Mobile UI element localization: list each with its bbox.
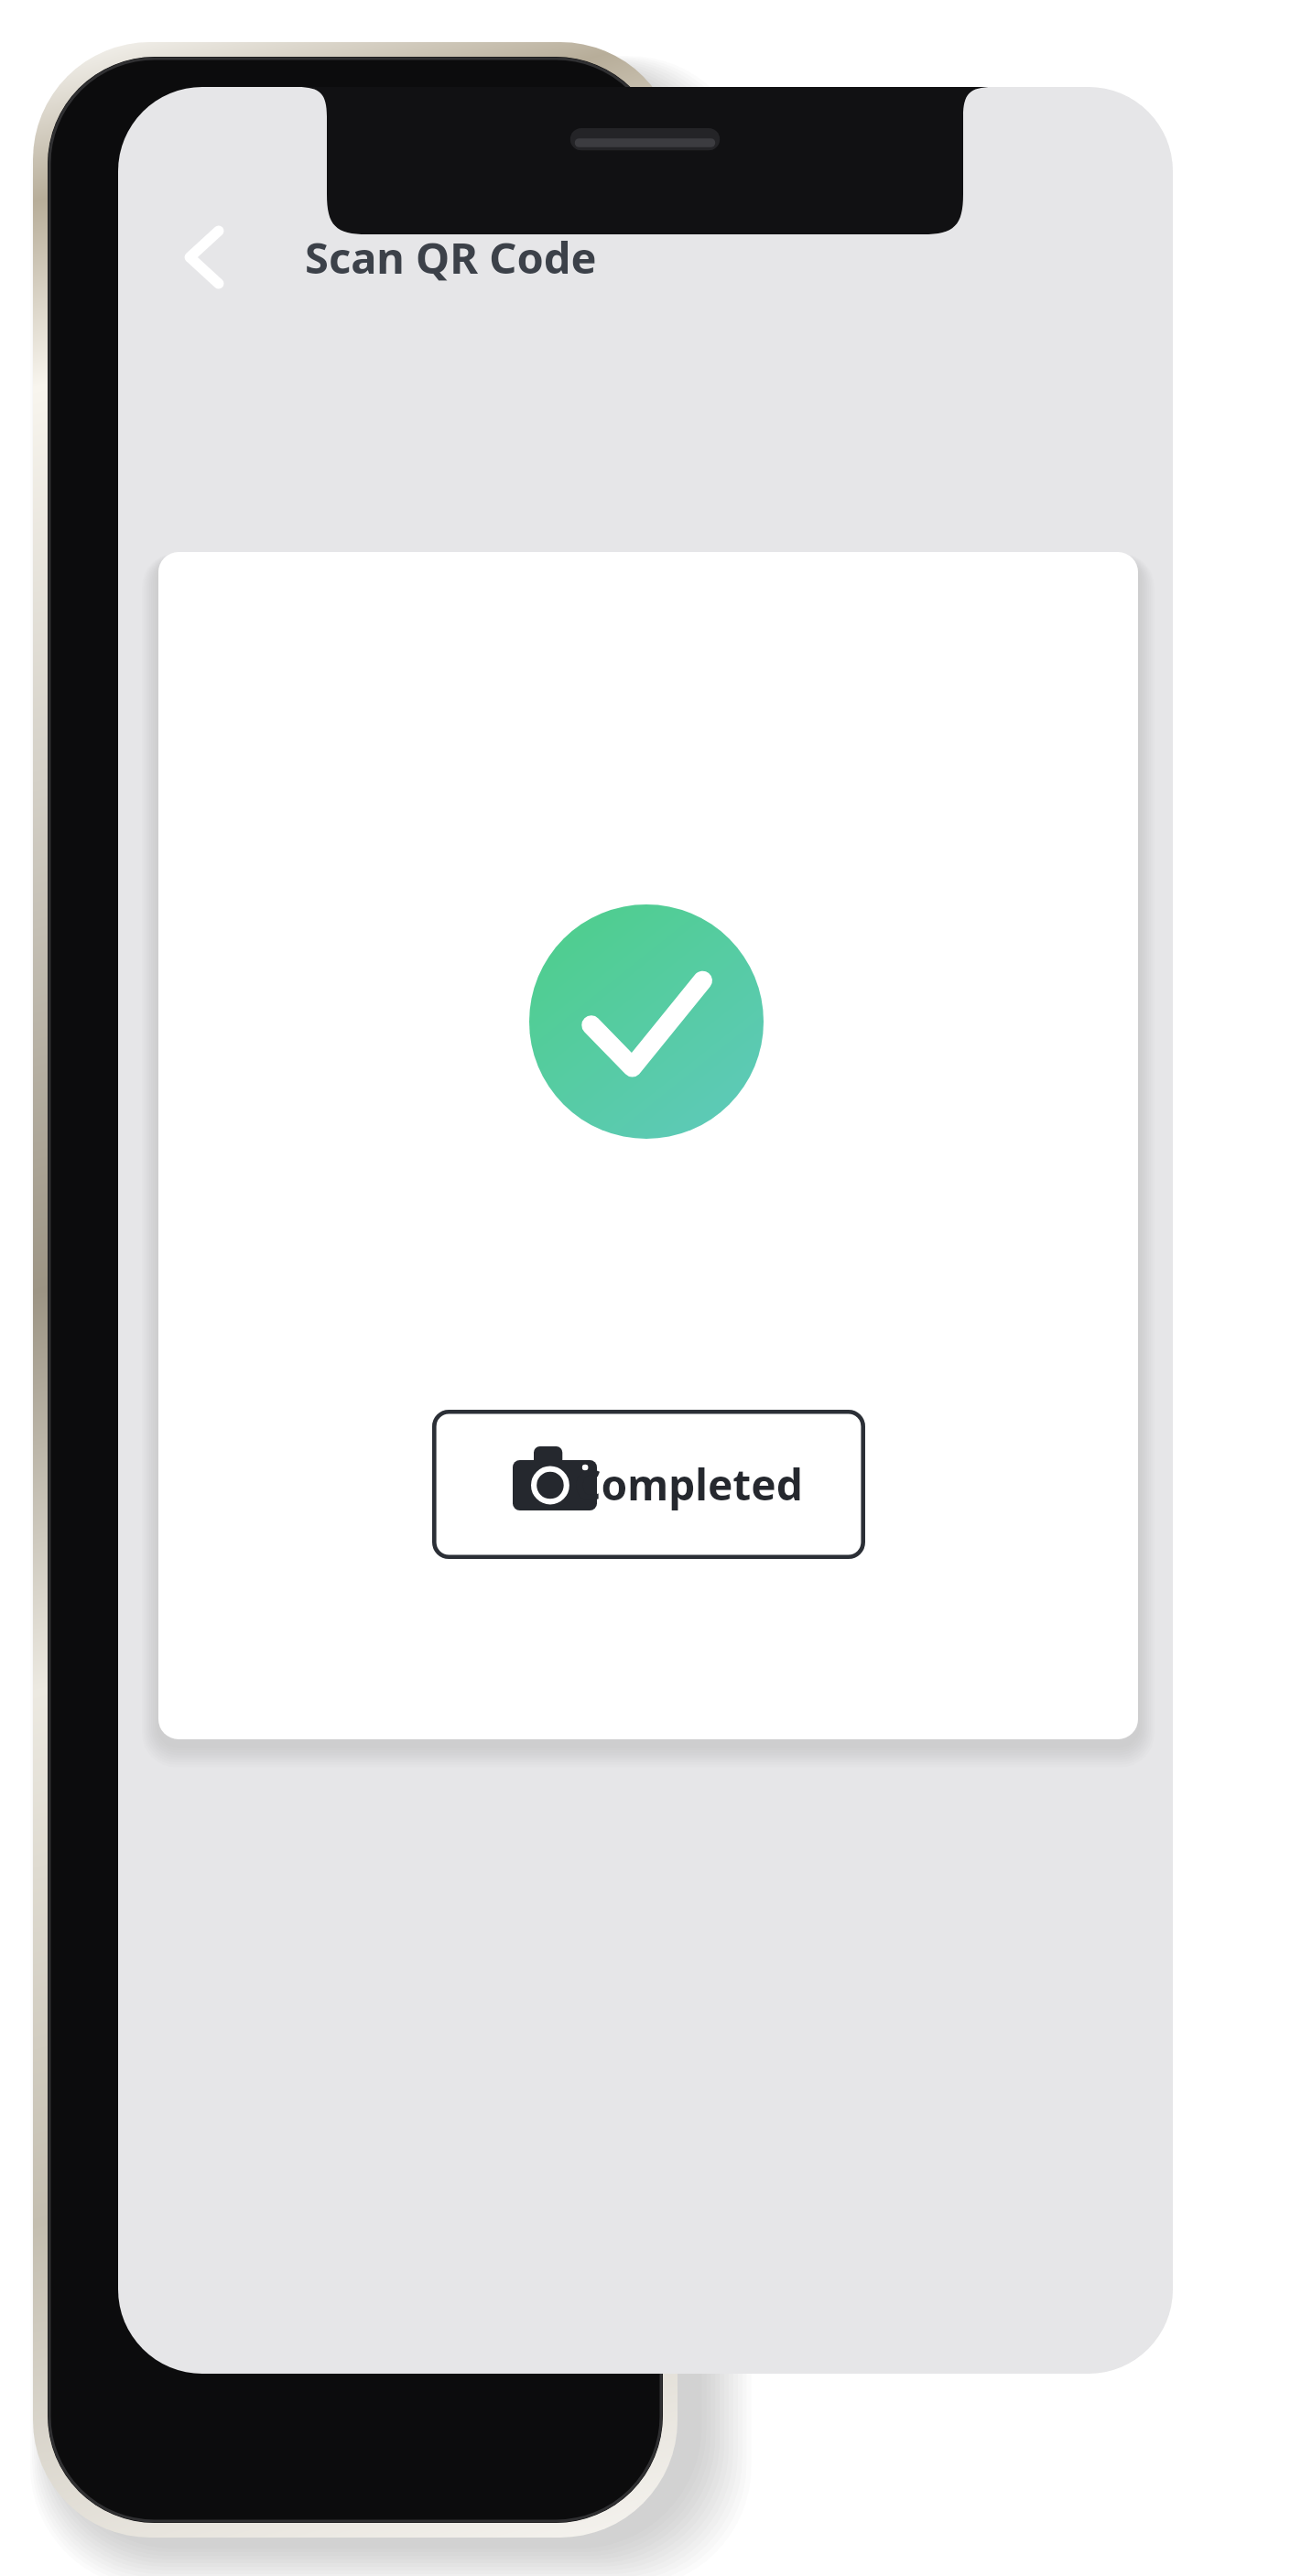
staticText: Completed (574, 1456, 803, 1513)
staticText: Scan QR Code (305, 228, 597, 287)
button[interactable]: Back (161, 213, 251, 301)
button[interactable]: Completed (432, 1410, 865, 1559)
